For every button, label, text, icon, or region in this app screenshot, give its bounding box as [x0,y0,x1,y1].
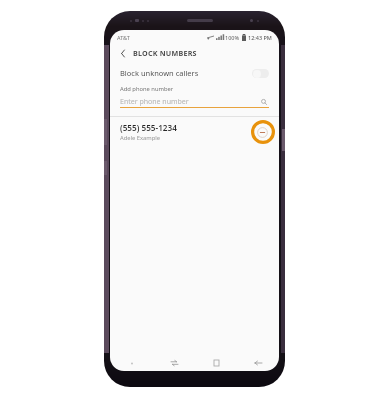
staticText: (555) 555-1234 [120,122,177,133]
button[interactable]: Search contacts [259,97,269,107]
button[interactable]: Back [116,46,130,60]
button[interactable]: Recents [153,355,195,371]
button[interactable]: (555) 555-1234 [110,117,279,147]
button[interactable]: Block unknown callers toggle [252,69,269,78]
staticText: Block unknown callers [120,68,199,78]
button[interactable]: Block unknown callers [110,61,279,85]
staticText: 100% [225,34,240,41]
staticText: AT&T [117,34,130,41]
button[interactable]: Home [195,355,237,371]
button[interactable]: Back [237,355,279,371]
button[interactable]: Keyboard hide [110,355,153,371]
staticText: Adele Example [120,134,161,142]
staticText: BLOCK NUMBERS [133,48,197,58]
button[interactable]: Remove blocked number [256,126,269,139]
staticText: 12:43 PM [248,34,272,41]
staticText: Add phone number [120,85,174,93]
button[interactable]: Enter phone number [120,97,259,107]
